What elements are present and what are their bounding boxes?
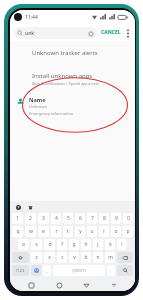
button[interactable]: Hide keyboard (108, 279, 120, 291)
button[interactable]: Emoji (31, 265, 41, 276)
button[interactable]: 6 (75, 213, 85, 224)
button[interactable]: , (43, 265, 51, 276)
button[interactable]: f (57, 239, 67, 250)
staticText: Unknown (29, 104, 47, 109)
staticText: unk (25, 30, 35, 37)
button[interactable]: Unknown tracker alerts (10, 47, 135, 59)
staticText: Install unknown apps (32, 72, 93, 80)
button[interactable]: 3 (38, 213, 49, 224)
button[interactable]: j (93, 239, 103, 250)
staticText: l (121, 241, 123, 248)
staticText: f (61, 241, 63, 248)
staticText: k (109, 241, 112, 248)
button[interactable]: s (31, 239, 42, 250)
staticText: . (110, 268, 112, 273)
button[interactable]: o (111, 226, 121, 237)
button[interactable]: Shift (12, 252, 29, 263)
button[interactable]: b (81, 252, 91, 263)
staticText: z (35, 254, 38, 261)
button[interactable]: 2 (25, 213, 36, 224)
staticText: CANCEL (101, 29, 121, 36)
button[interactable]: 4 (51, 213, 61, 224)
staticText: 0 (127, 215, 130, 222)
staticText: QWERTY (72, 268, 87, 273)
staticText: a (22, 241, 25, 248)
button[interactable]: CANCEL (100, 29, 122, 36)
staticText: b (84, 254, 88, 261)
button[interactable]: w (25, 226, 36, 237)
staticText: Name (29, 96, 46, 103)
button[interactable]: 8 (99, 213, 109, 224)
button[interactable]: Back (80, 279, 92, 291)
staticText: x (48, 254, 51, 261)
button[interactable]: 0 (123, 213, 133, 224)
button[interactable]: Name (10, 95, 135, 116)
button[interactable]: 1 (12, 213, 23, 224)
button[interactable]: p (123, 226, 133, 237)
staticText: Apps & notifications > Special app acces… (32, 81, 99, 86)
staticText: 6 (79, 215, 82, 222)
button[interactable]: Backspace (117, 252, 133, 263)
button[interactable]: g (69, 239, 79, 250)
staticText: t (67, 228, 69, 235)
button[interactable]: ?123 (12, 265, 29, 276)
button[interactable]: . (107, 265, 115, 276)
button[interactable]: n (93, 252, 103, 263)
button[interactable]: a (18, 239, 29, 250)
button[interactable]: Sticker (15, 204, 22, 211)
button[interactable]: u (87, 226, 97, 237)
staticText: 7 (91, 215, 94, 222)
button[interactable]: t (63, 226, 73, 237)
staticText: w (29, 228, 33, 235)
button[interactable]: Home (53, 279, 65, 291)
button[interactable]: 7 (87, 213, 97, 224)
staticText: j (97, 241, 99, 248)
button[interactable]: Clear search (87, 30, 94, 37)
staticText: u (90, 228, 94, 235)
button[interactable]: v (69, 252, 79, 263)
staticText: 3 (42, 215, 45, 222)
button[interactable]: k (105, 239, 115, 250)
staticText: m (108, 254, 113, 261)
button[interactable]: 5 (63, 213, 73, 224)
button[interactable]: Space (53, 265, 105, 276)
staticText: e (42, 228, 45, 235)
staticText: r (55, 228, 58, 235)
staticText: q (16, 228, 20, 235)
button[interactable]: e (38, 226, 49, 237)
staticText: 1 (16, 215, 19, 222)
button[interactable]: d (44, 239, 55, 250)
button[interactable]: r (51, 226, 61, 237)
button[interactable]: m (105, 252, 115, 263)
button[interactable]: 9 (111, 213, 121, 224)
staticText: Emergency information (29, 111, 74, 116)
staticText: v (73, 254, 76, 261)
button[interactable]: x (44, 252, 55, 263)
button[interactable]: More options (124, 26, 131, 40)
button[interactable]: Install unknown apps (10, 71, 135, 87)
button[interactable]: l (117, 239, 127, 250)
staticText: y (79, 228, 82, 235)
staticText: s (35, 241, 38, 248)
staticText: i (103, 228, 105, 235)
button[interactable]: Search (14, 27, 97, 39)
button[interactable]: Recent apps (25, 279, 37, 291)
staticText: Unknown tracker alerts (32, 49, 98, 57)
button[interactable]: h (81, 239, 91, 250)
other: Search (17, 30, 23, 36)
staticText: 5 (67, 215, 70, 222)
button[interactable]: z (31, 252, 42, 263)
staticText: 9 (115, 215, 118, 222)
button[interactable]: y (75, 226, 85, 237)
button[interactable]: Clipboard (27, 204, 34, 211)
staticText: p (126, 228, 130, 235)
button[interactable]: i (99, 226, 109, 237)
staticText: h (84, 241, 88, 248)
button[interactable]: q (12, 226, 23, 237)
staticText: 8 (103, 215, 106, 222)
button[interactable]: Search (117, 265, 133, 276)
button[interactable]: c (57, 252, 67, 263)
staticText: o (114, 228, 118, 235)
staticText: 11:44 (25, 14, 38, 21)
staticText: , (46, 268, 48, 273)
